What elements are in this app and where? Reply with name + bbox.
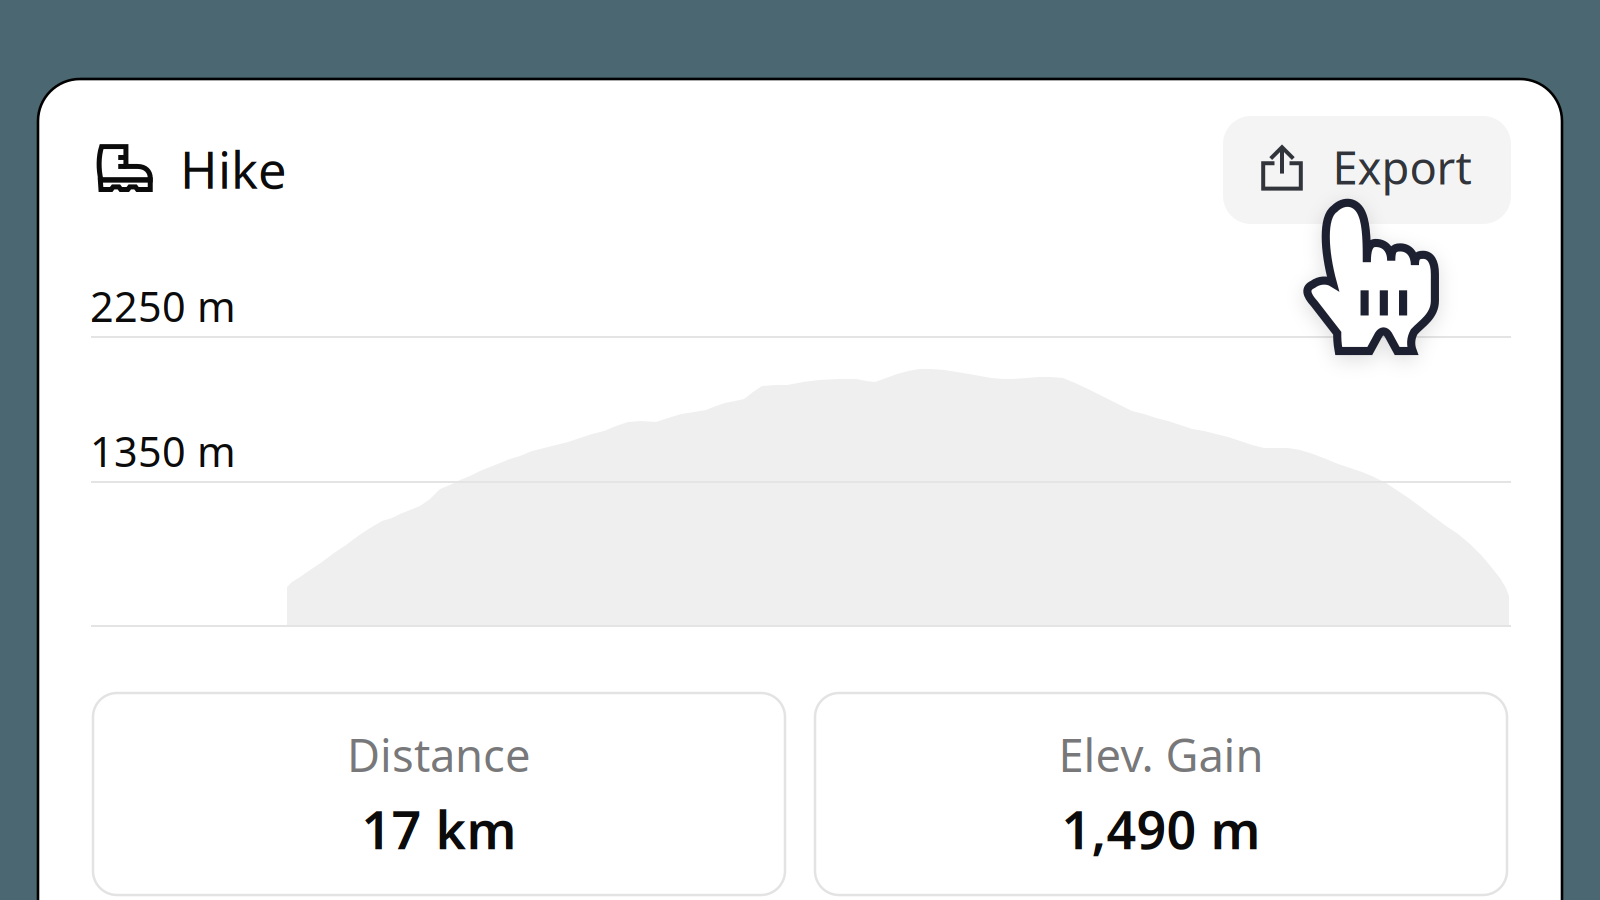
- button[interactable]: Distance: [93, 693, 785, 895]
- staticText: 17 km: [361, 795, 516, 864]
- staticText: Elev. Gain: [1058, 724, 1263, 785]
- staticText: 1,490 m: [1061, 795, 1260, 864]
- staticText: 1350 m: [90, 424, 236, 478]
- staticText: Hike: [180, 135, 287, 203]
- button[interactable]: Export: [1223, 116, 1511, 224]
- staticText: Export: [1332, 137, 1471, 197]
- staticText: 2250 m: [90, 279, 236, 333]
- button[interactable]: Elev. Gain: [815, 693, 1507, 895]
- staticText: Distance: [347, 724, 531, 785]
